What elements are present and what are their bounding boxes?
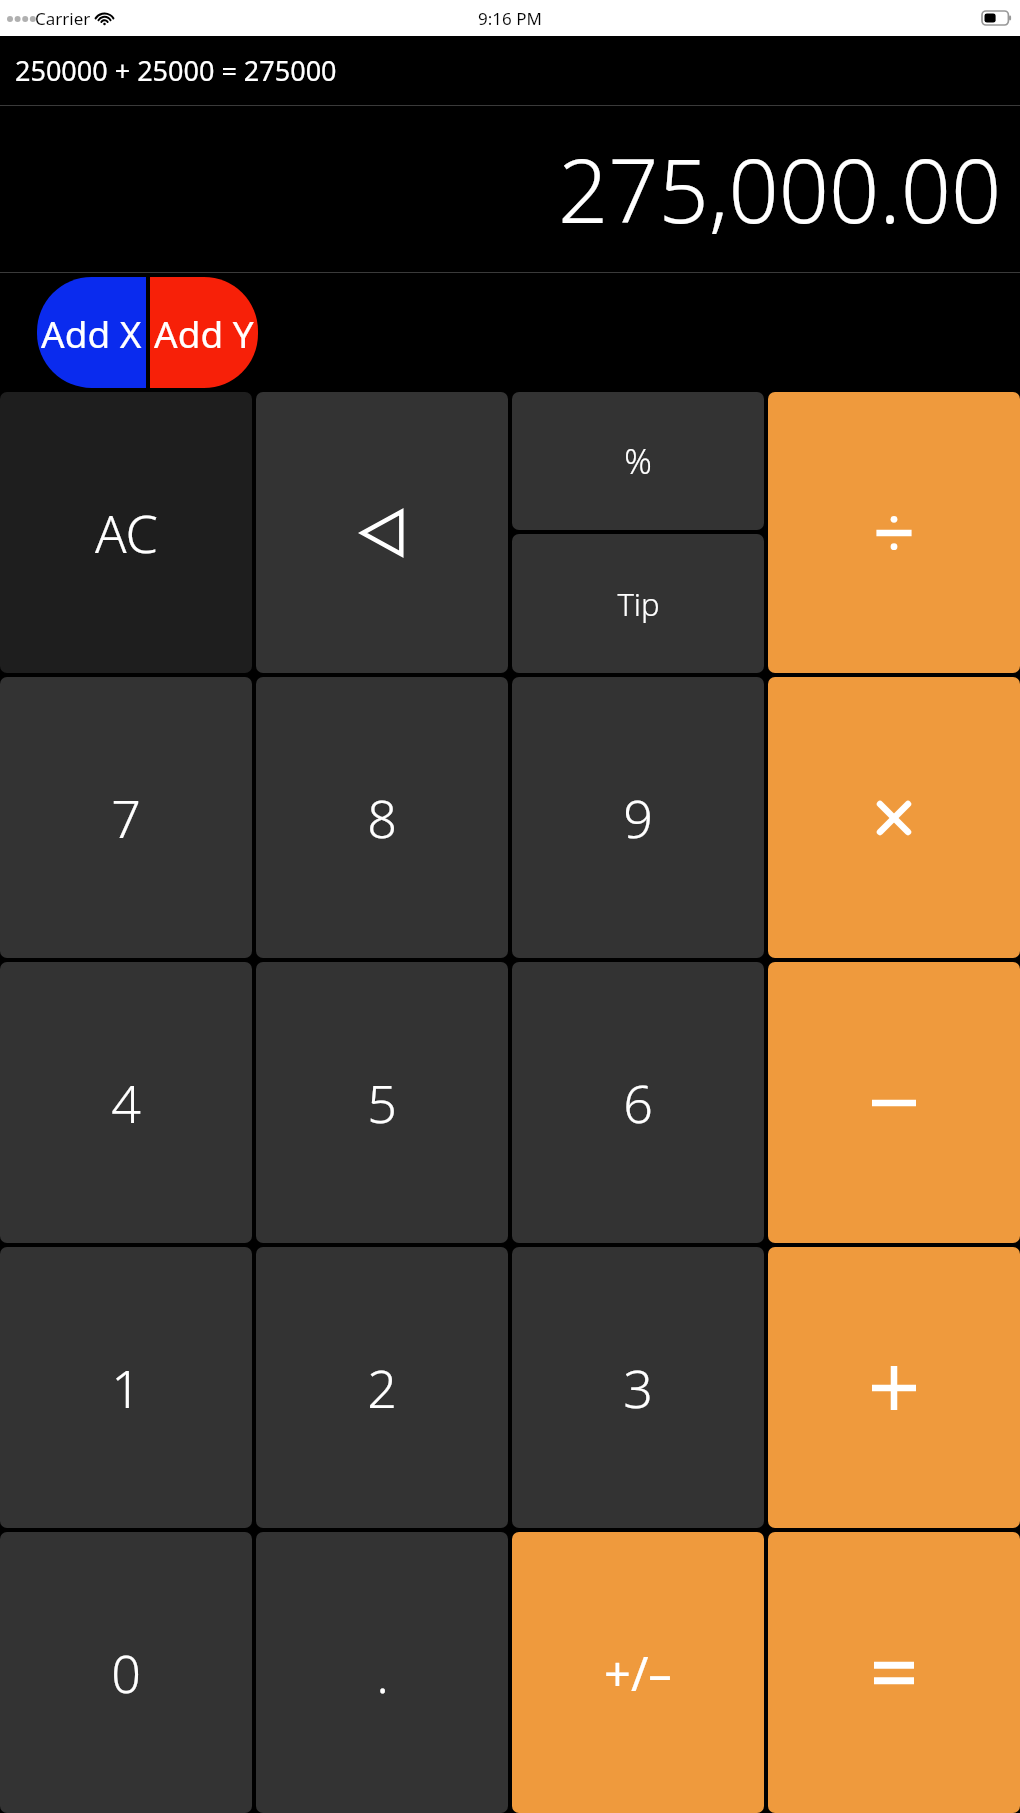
button[interactable]: 6 — [512, 962, 764, 1243]
button[interactable]: % — [512, 392, 764, 530]
staticText: +/– — [604, 1641, 672, 1705]
button[interactable]: 5 — [256, 962, 508, 1243]
button[interactable]: AC — [0, 392, 252, 673]
button[interactable]: 3 — [512, 1247, 764, 1528]
button[interactable]: Plus minus sign — [512, 1532, 764, 1813]
staticText: Tip — [617, 583, 660, 625]
staticText: Add X — [41, 308, 142, 358]
button[interactable]: Add Y — [150, 277, 258, 388]
button[interactable]: 4 — [0, 962, 252, 1243]
staticText: 250000 + 25000 = 275000 — [15, 52, 337, 89]
button[interactable]: Add X — [37, 277, 146, 388]
staticText: 7 — [111, 782, 141, 853]
staticText: . — [376, 1637, 389, 1708]
staticText: 275,000.00 — [558, 129, 1002, 249]
button[interactable]: . — [256, 1532, 508, 1813]
staticText: 9:16 PM — [478, 7, 542, 30]
staticText: 9 — [623, 782, 653, 853]
staticText: 4 — [111, 1067, 141, 1138]
button[interactable]: 0 — [0, 1532, 252, 1813]
button[interactable]: 7 — [0, 677, 252, 958]
button[interactable]: Multiply — [768, 677, 1020, 958]
button[interactable]: 9 — [512, 677, 764, 958]
staticText: 1 — [111, 1352, 141, 1423]
staticText: % — [624, 438, 652, 484]
button[interactable]: Backspace — [256, 392, 508, 673]
button[interactable]: Minus — [768, 962, 1020, 1243]
button[interactable]: 8 — [256, 677, 508, 958]
staticText: 3 — [623, 1352, 653, 1423]
button[interactable]: Plus — [768, 1247, 1020, 1528]
staticText: Add Y — [154, 308, 254, 358]
staticText: Carrier — [35, 7, 91, 30]
button[interactable]: Divide — [768, 392, 1020, 673]
staticText: 2 — [367, 1352, 397, 1423]
button[interactable]: Equals — [768, 1532, 1020, 1813]
button[interactable]: 2 — [256, 1247, 508, 1528]
staticText: 5 — [367, 1067, 397, 1138]
staticText: 8 — [367, 782, 397, 853]
staticText: AC — [95, 497, 158, 568]
staticText: 6 — [623, 1067, 653, 1138]
button[interactable]: Tip — [512, 534, 764, 673]
button[interactable]: 1 — [0, 1247, 252, 1528]
staticText: 0 — [111, 1637, 141, 1708]
